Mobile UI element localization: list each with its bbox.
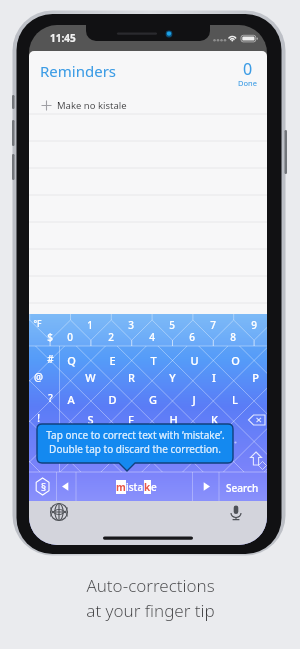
- staticText: at your finger tip: [86, 599, 215, 622]
- staticText: L: [232, 392, 238, 407]
- staticText: $: [47, 330, 53, 344]
- staticText: O: [231, 353, 240, 368]
- staticText: R: [128, 370, 135, 385]
- staticText: H: [169, 412, 178, 427]
- staticText: 6: [189, 330, 195, 344]
- staticText: 2: [108, 330, 114, 344]
- button[interactable]: Dictate: [226, 502, 246, 522]
- staticText: A: [67, 392, 75, 407]
- button[interactable]: 0: [229, 58, 257, 90]
- button[interactable]: Change keyboard: [49, 502, 69, 522]
- staticText: !: [37, 411, 40, 425]
- staticText: S: [87, 412, 94, 427]
- button[interactable]: Make no kistale: [29, 97, 267, 113]
- staticText: Done: [238, 78, 257, 88]
- staticText: D: [108, 392, 117, 407]
- staticText: K: [211, 412, 218, 427]
- button[interactable]: Reminders: [40, 60, 117, 82]
- staticText: E: [109, 353, 116, 368]
- staticText: I: [212, 370, 216, 385]
- staticText: @: [34, 370, 43, 384]
- staticText: ?: [48, 391, 53, 405]
- staticText: 4: [149, 330, 155, 344]
- staticText: T: [150, 353, 157, 368]
- staticText: U: [190, 353, 199, 368]
- staticText: 0: [67, 330, 73, 344]
- staticText: §: [41, 480, 47, 494]
- staticText: Double tap to discard the correction.: [49, 442, 221, 456]
- staticText: m: [116, 480, 126, 494]
- staticText: F: [128, 412, 134, 427]
- staticText: 8: [230, 330, 236, 344]
- staticText: Search: [226, 481, 259, 495]
- staticText: Auto-corrections: [86, 574, 215, 597]
- staticText: #: [47, 352, 54, 366]
- staticText: Tap once to correct text with ‘mistake’.: [46, 428, 225, 442]
- staticText: Reminders: [40, 61, 117, 81]
- staticText: W: [85, 370, 96, 385]
- staticText: e: [151, 480, 157, 494]
- staticText: 7: [210, 318, 216, 332]
- staticText: Make no kistale: [57, 99, 127, 112]
- staticText: ista: [126, 480, 144, 494]
- staticText: k: [144, 480, 151, 494]
- staticText: G: [149, 392, 157, 407]
- staticText: 0: [243, 58, 253, 80]
- staticText: 5: [169, 318, 175, 332]
- staticText: 11:45: [50, 31, 76, 45]
- staticText: 1: [87, 318, 93, 332]
- staticText: Y: [169, 370, 176, 385]
- button[interactable]: °F: [29, 314, 267, 545]
- staticText: Q: [67, 353, 76, 368]
- staticText: P: [252, 370, 259, 385]
- button[interactable]: Shift: [241, 447, 267, 471]
- staticText: °F: [33, 318, 42, 330]
- staticText: 3: [128, 318, 134, 332]
- staticText: J: [192, 392, 196, 407]
- button[interactable]: Backspace: [242, 409, 267, 431]
- staticText: 9: [251, 318, 257, 332]
